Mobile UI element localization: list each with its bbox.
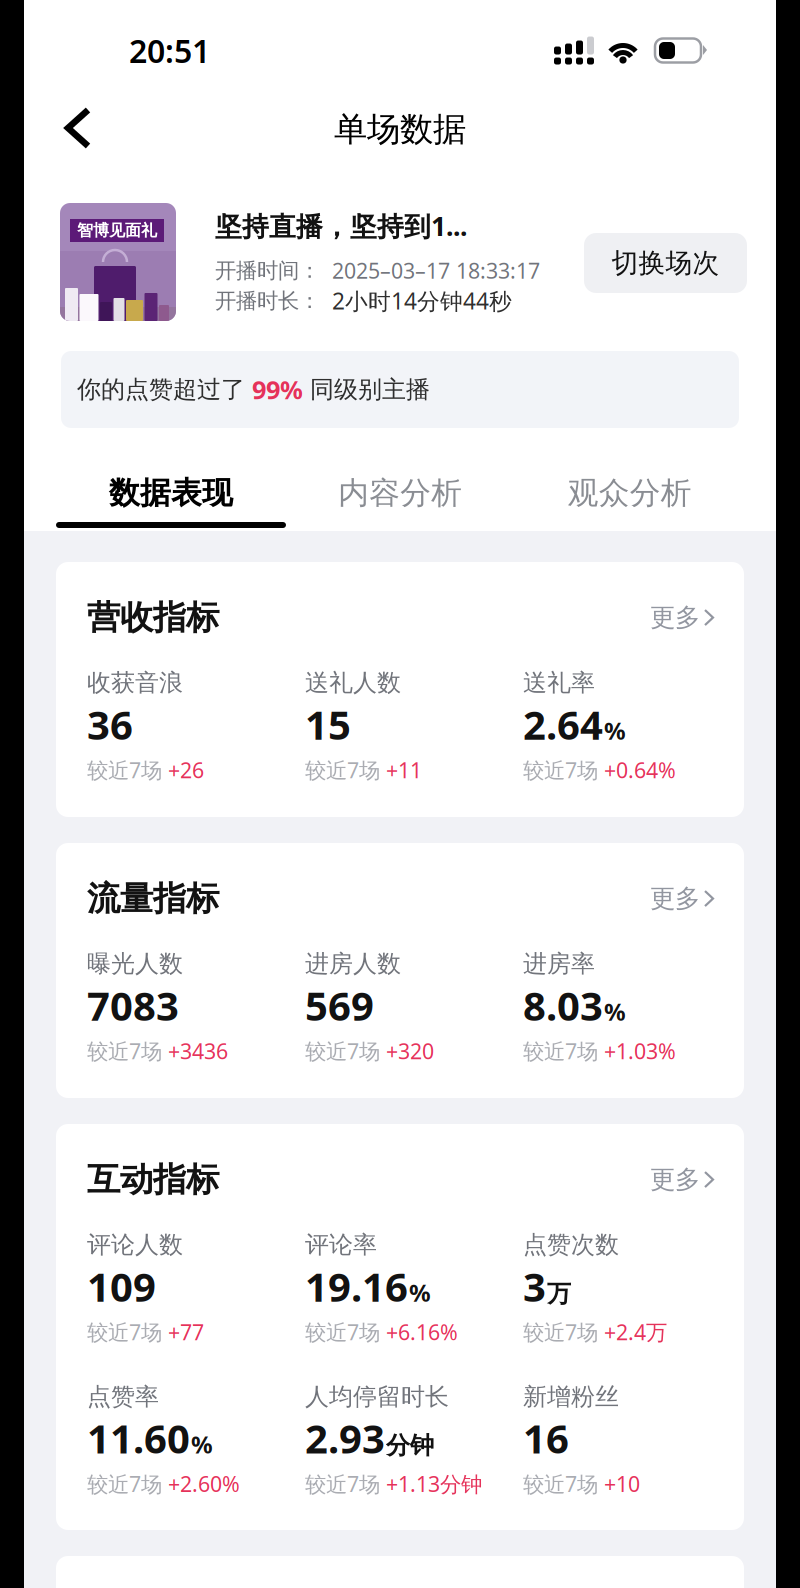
button[interactable]: 更多 <box>636 1156 713 1203</box>
staticText: 较近7场 <box>87 1037 162 1065</box>
staticText: 点赞率 <box>87 1382 159 1411</box>
staticText: 更多 <box>650 1164 700 1195</box>
staticText: 更多 <box>650 602 700 633</box>
staticText: 新增粉丝 <box>523 1382 619 1411</box>
staticText: +26 <box>168 756 204 784</box>
staticText: 15 <box>305 698 351 751</box>
staticText: 单场数据 <box>334 109 466 150</box>
staticText: 11.60 <box>87 1411 190 1465</box>
button[interactable]: 内容分析 <box>285 428 515 531</box>
staticText: 观众分析 <box>568 474 692 512</box>
button[interactable]: 更多 <box>636 875 713 922</box>
staticText: 评论人数 <box>87 1230 183 1260</box>
staticText: 2.93 <box>305 1411 385 1465</box>
staticText: 较近7场 <box>305 1037 380 1065</box>
staticText: 569 <box>305 979 374 1032</box>
staticText: 人均停留时长 <box>305 1382 449 1411</box>
staticText: 送礼人数 <box>305 668 401 698</box>
staticText: 19.16 <box>305 1260 408 1313</box>
staticText: 较近7场 <box>87 756 162 784</box>
staticText: % <box>604 714 626 746</box>
staticText: 进房人数 <box>305 949 401 979</box>
staticText: 智博见面礼 <box>77 221 157 240</box>
staticText: 2.64 <box>523 698 603 751</box>
staticText: 流量指标 <box>87 878 219 919</box>
staticText: +11 <box>386 756 422 784</box>
staticText: 较近7场 <box>523 1037 598 1065</box>
staticText: 8.03 <box>523 979 603 1032</box>
staticText: 进房率 <box>523 949 595 979</box>
staticText: % <box>409 1276 431 1308</box>
staticText: +320 <box>386 1037 434 1065</box>
staticText: 切换场次 <box>611 247 719 279</box>
staticText: 2小时14分钟44秒 <box>320 286 512 316</box>
staticText: 7083 <box>87 979 179 1032</box>
staticText: 3 <box>523 1260 546 1313</box>
staticText: 较近7场 <box>523 756 598 784</box>
staticText: 20:51 <box>129 29 210 72</box>
staticText: +6.16% <box>386 1318 458 1346</box>
staticText: % <box>604 995 626 1027</box>
staticText: 较近7场 <box>523 1318 598 1346</box>
staticText: 营收指标 <box>87 597 219 638</box>
staticText: 36 <box>87 698 133 751</box>
staticText: 坚持直播，坚持到1... <box>215 208 467 243</box>
staticText: 评论率 <box>305 1230 377 1260</box>
staticText: 点赞次数 <box>523 1230 619 1260</box>
staticText: 互动指标 <box>87 1159 219 1200</box>
staticText: +1.03% <box>604 1037 676 1065</box>
staticText: 开播时长： <box>215 288 320 314</box>
button[interactable]: 观众分析 <box>515 428 744 531</box>
staticText: 较近7场 <box>305 1318 380 1346</box>
staticText: 万 <box>547 1279 571 1308</box>
staticText: +1.13分钟 <box>386 1470 482 1498</box>
staticText: 较近7场 <box>523 1470 598 1498</box>
staticText: 更多 <box>650 883 700 914</box>
staticText: 你的点赞超过了 <box>77 375 245 404</box>
button[interactable]: 更多 <box>636 594 713 641</box>
staticText: % <box>191 1428 213 1460</box>
staticText: +3436 <box>168 1037 228 1065</box>
staticText: 较近7场 <box>305 1470 380 1498</box>
button[interactable]: 返回 <box>45 94 111 162</box>
staticText: 较近7场 <box>305 756 380 784</box>
staticText: 开播时间： <box>215 257 320 284</box>
staticText: +10 <box>604 1470 640 1498</box>
staticText: +77 <box>168 1318 204 1346</box>
staticText: 分钟 <box>386 1431 434 1460</box>
staticText: 99% <box>245 373 310 406</box>
staticText: 数据表现 <box>109 474 233 512</box>
staticText: 曝光人数 <box>87 949 183 979</box>
staticText: 16 <box>523 1411 569 1465</box>
staticText: 同级别主播 <box>310 375 430 404</box>
staticText: 较近7场 <box>87 1470 162 1498</box>
staticText: +0.64% <box>604 756 676 784</box>
staticText: 内容分析 <box>338 474 462 512</box>
staticText: 收获音浪 <box>87 668 183 698</box>
staticText: +2.60% <box>168 1470 240 1498</box>
staticText: 109 <box>87 1260 156 1313</box>
button[interactable]: 切换场次 <box>584 233 747 293</box>
staticText: +2.4万 <box>604 1318 667 1346</box>
staticText: 较近7场 <box>87 1318 162 1346</box>
staticText: 送礼率 <box>523 668 595 698</box>
button[interactable]: 数据表现 <box>56 428 285 531</box>
staticText: 2025–03–17 18:33:17 <box>320 256 540 285</box>
